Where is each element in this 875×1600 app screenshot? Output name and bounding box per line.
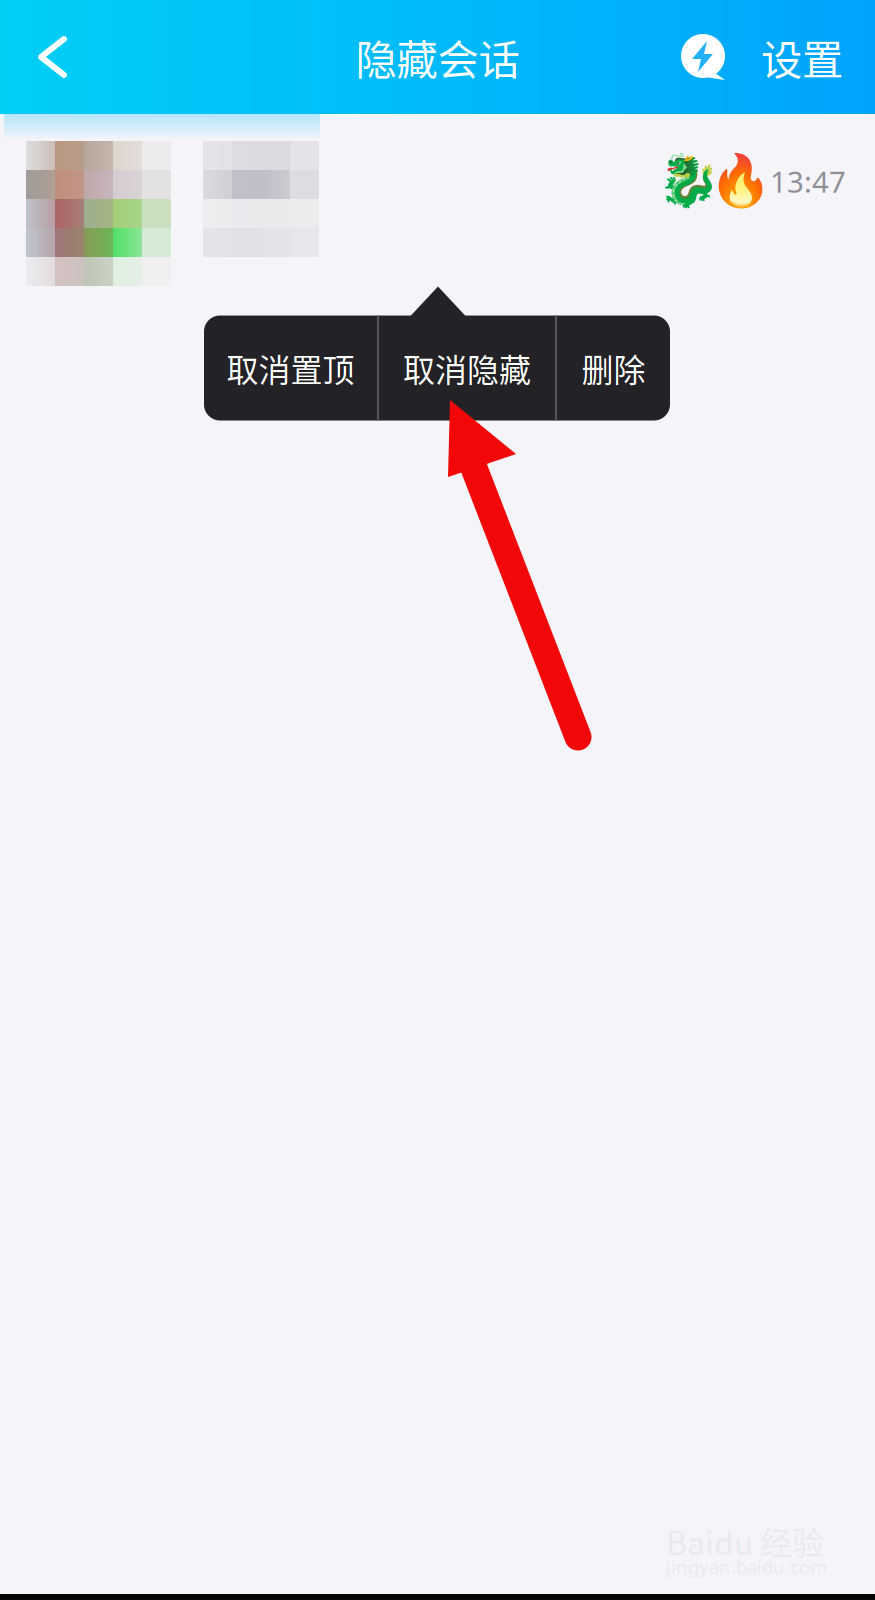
button[interactable]: 删除 xyxy=(557,315,670,420)
staticText: 取消隐藏 xyxy=(403,345,531,391)
button[interactable]: 取消隐藏 xyxy=(379,315,555,420)
staticText: 设置 xyxy=(761,27,843,87)
button[interactable]: 取消置顶 xyxy=(204,315,377,420)
button[interactable]: 返回 xyxy=(0,0,95,114)
staticText: 🐉 xyxy=(657,152,720,210)
staticText: jingyan.baidu.com xyxy=(666,1554,827,1579)
staticText: 删除 xyxy=(581,345,645,391)
staticText: 13:47 xyxy=(770,162,846,201)
button[interactable]: 设置 xyxy=(660,0,875,114)
staticText: 取消置顶 xyxy=(226,345,354,391)
staticText: 隐藏会话 xyxy=(355,27,519,87)
button[interactable]: 🐉 xyxy=(0,116,875,276)
staticText: 🔥 xyxy=(709,152,772,210)
staticText: Baidu 经验 xyxy=(666,1518,824,1564)
